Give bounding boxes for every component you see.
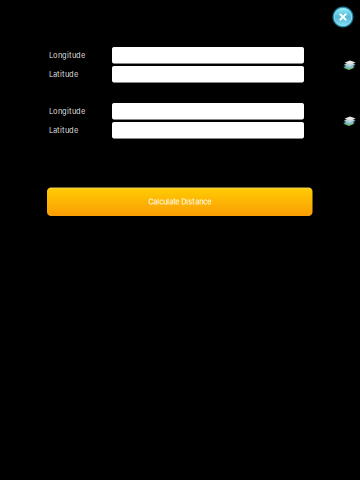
button[interactable]: Calculate Distance: [47, 187, 312, 216]
staticText: Calculate Distance: [148, 197, 211, 206]
staticText: Latitude: [49, 126, 78, 135]
button[interactable]: Pick location on map: [337, 53, 360, 77]
button[interactable]: Close: [328, 2, 358, 32]
staticText: Latitude: [49, 70, 78, 79]
staticText: Longitude: [49, 107, 85, 116]
staticText: Longitude: [49, 51, 85, 60]
button[interactable]: Pick location on map: [337, 109, 360, 133]
